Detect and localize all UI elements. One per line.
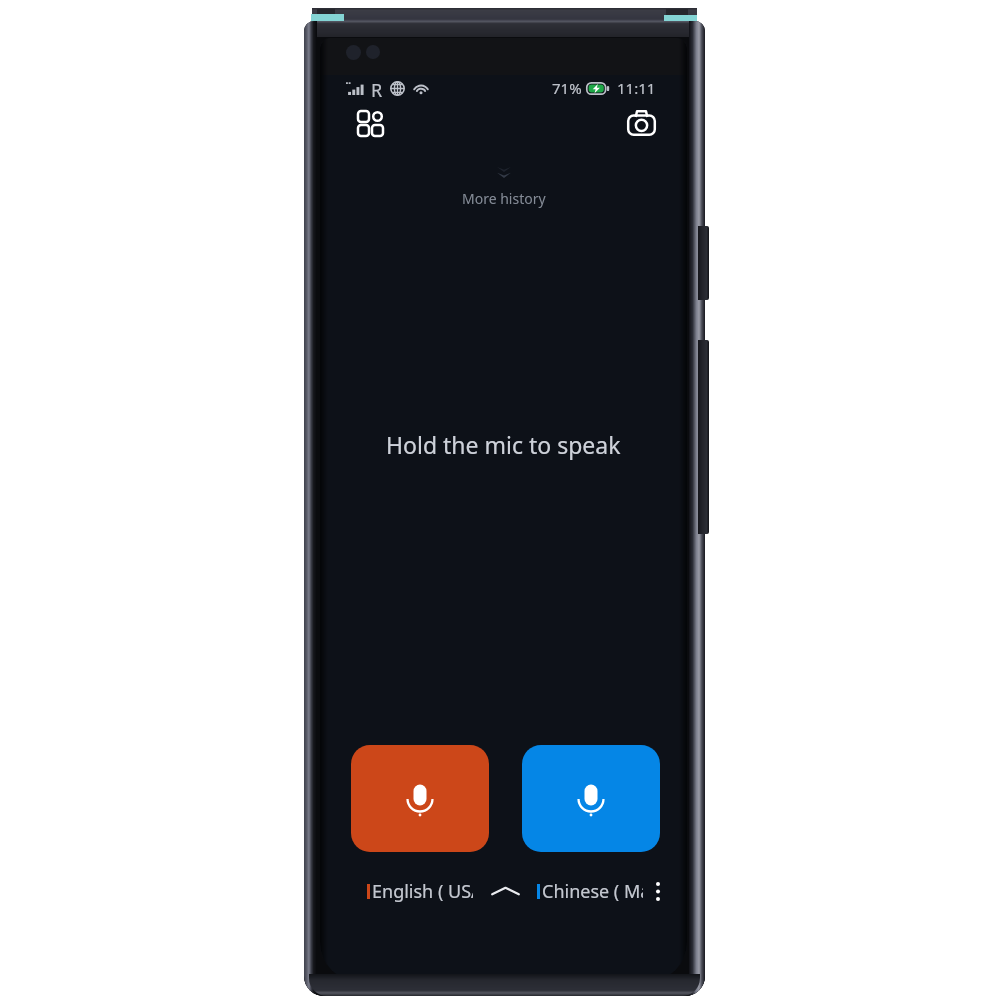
staticText: Chinese ( Mandarin ) — [542, 879, 643, 904]
staticText: More history — [462, 189, 546, 208]
staticText: 71% — [552, 78, 582, 98]
staticText: English ( USA ) — [372, 879, 473, 904]
button[interactable]: Chinese ( Mandarin ) — [537, 874, 643, 908]
button[interactable]: Apps — [358, 104, 396, 142]
button[interactable]: Hold to speak English — [351, 745, 489, 852]
button[interactable]: More options — [647, 876, 669, 906]
button[interactable]: English ( USA ) — [367, 874, 473, 908]
button[interactable]: Hold to speak Chinese — [522, 745, 660, 852]
button[interactable]: More history — [320, 166, 687, 208]
staticText: R — [371, 78, 383, 98]
staticText: Hold the mic to speak — [386, 429, 621, 460]
button[interactable]: Swap languages — [473, 874, 537, 908]
staticText: 11:11 — [617, 78, 656, 98]
button[interactable]: Camera — [618, 104, 656, 142]
